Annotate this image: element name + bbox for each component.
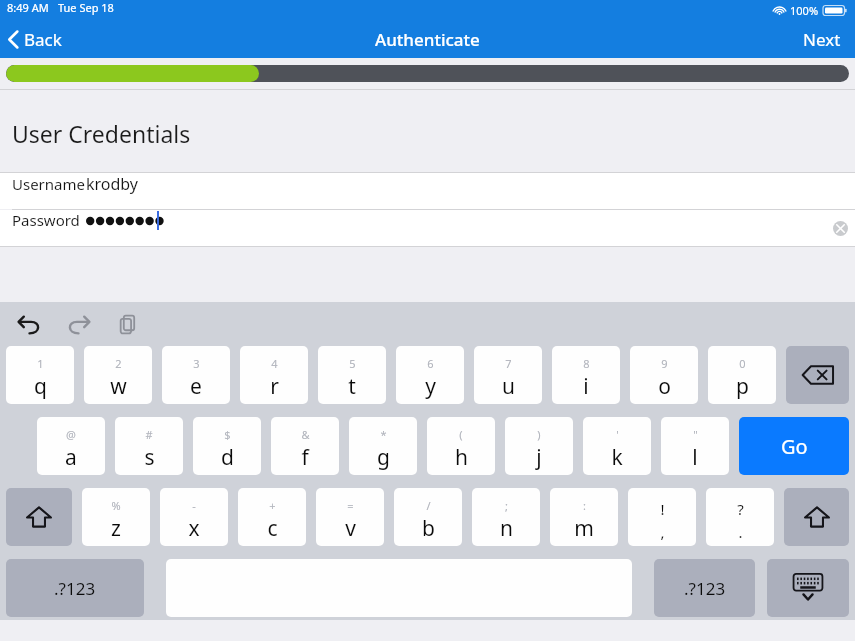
staticText: b [422,514,435,543]
button[interactable]: 0 [708,346,776,404]
button[interactable]: Undo [12,307,46,341]
staticText: % [111,498,121,513]
button[interactable]: 8 [552,346,620,404]
staticText: @ [66,427,76,442]
staticText: w [110,372,127,401]
staticText: 1 [37,356,44,371]
staticText: m [574,514,594,543]
staticText: Back [24,28,62,51]
staticText: ) [537,427,541,442]
staticText: 5 [349,356,356,371]
staticText: y [425,372,436,401]
staticText: x [188,514,200,543]
staticText: z [111,514,121,543]
staticText: 6 [427,356,434,371]
button[interactable]: Redo [62,307,96,341]
button[interactable]: Go [739,417,849,475]
staticText: 8:49 AM [7,0,49,15]
staticText: ? [737,499,744,519]
staticText: 7 [505,356,512,371]
staticText: , [660,522,665,542]
button[interactable]: Shift [6,488,72,546]
staticText: h [455,443,468,472]
staticText: ; [505,498,508,513]
button[interactable]: 2 [84,346,152,404]
staticText: 4 [271,356,278,371]
staticText: g [377,443,390,472]
staticText: Password [12,210,80,230]
button[interactable]: ( [427,417,495,475]
staticText: l [692,443,698,472]
staticText: / [426,498,431,513]
staticText: + [269,498,276,513]
staticText: e [190,372,202,401]
button[interactable]: Back [0,24,74,55]
staticText: * [380,427,387,442]
staticText: Username [12,174,85,194]
button[interactable]: 6 [396,346,464,404]
button[interactable]: 7 [474,346,542,404]
button[interactable]: Clear text [833,221,848,236]
staticText: t [348,372,356,401]
button[interactable]: $ [193,417,261,475]
button[interactable]: ; [472,488,540,546]
button[interactable]: 9 [630,346,698,404]
button[interactable]: 4 [240,346,308,404]
staticText: ! [660,499,665,519]
staticText: n [500,514,513,543]
button[interactable]: = [316,488,384,546]
button[interactable]: .?123 [6,559,144,617]
button[interactable]: Next [789,22,855,57]
button[interactable]: " [661,417,729,475]
button[interactable]: - [160,488,228,546]
button[interactable]: + [238,488,306,546]
button[interactable]: 3 [162,346,230,404]
button[interactable]: : [550,488,618,546]
button[interactable]: * [349,417,417,475]
staticText: 9 [661,356,668,371]
staticText: f [301,443,309,472]
staticText: Go [781,433,808,460]
button[interactable]: 1 [6,346,74,404]
staticText: .?123 [54,577,96,600]
staticText: .?123 [684,577,726,600]
button[interactable]: Paste [112,307,146,341]
button[interactable]: ? [706,488,774,546]
staticText: 2 [115,356,122,371]
staticText: i [583,372,589,401]
button[interactable]: 5 [318,346,386,404]
button[interactable]: @ [37,417,105,475]
button[interactable]: % [82,488,150,546]
button[interactable]: Shift [784,488,849,546]
staticText: . [738,522,743,542]
button[interactable]: # [115,417,183,475]
staticText: s [144,443,155,472]
staticText: c [267,514,278,543]
button[interactable]: ' [583,417,651,475]
staticText: $ [224,427,231,442]
staticText: = [347,498,354,513]
staticText: : [583,498,586,513]
button[interactable]: / [394,488,462,546]
button[interactable]: Password [0,210,855,246]
button[interactable]: Backspace [786,346,849,404]
staticText: u [502,372,515,401]
staticText: Next [803,28,841,51]
staticText: d [221,443,234,472]
button[interactable]: Hide keyboard [767,559,849,617]
staticText: r [270,372,279,401]
staticText: 0 [739,356,746,371]
staticText: ( [459,427,463,442]
staticText: & [301,427,310,442]
staticText: # [145,427,153,442]
button[interactable]: .?123 [654,559,755,617]
staticText: " [693,427,698,442]
button[interactable]: & [271,417,339,475]
button[interactable]: ! [628,488,696,546]
button[interactable]: ) [505,417,573,475]
staticText: 8 [583,356,590,371]
button[interactable]: Username [0,173,855,209]
staticText: Tue Sep 18 [58,0,114,15]
staticText: ' [616,427,619,442]
